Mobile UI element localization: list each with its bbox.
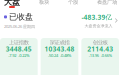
staticText: 深证成指	[49, 39, 69, 46]
staticText: 个股	[68, 0, 78, 5]
button[interactable]: -483.39亿	[82, 13, 118, 28]
staticText: -0.48%	[60, 53, 71, 58]
button[interactable]: 个股	[68, 0, 78, 6]
staticText: 2114.43	[87, 45, 113, 53]
staticText: 板块	[39, 0, 49, 5]
staticText: -483.39亿	[82, 13, 113, 22]
staticText: -13.96	[89, 53, 99, 58]
staticText: 10343.48	[44, 45, 74, 53]
staticText: 大盘资金净流入	[85, 23, 113, 28]
staticText: 上证指数	[9, 39, 29, 46]
staticText: 已收盘	[9, 12, 33, 22]
staticText: -0.66%	[101, 53, 112, 58]
button[interactable]: 看盘广场	[97, 0, 117, 6]
staticText: -0.22%	[18, 53, 29, 58]
button[interactable]: 大盘	[4, 0, 20, 8]
staticText: 大盘	[4, 0, 20, 7]
staticText: 创业板	[93, 39, 108, 46]
staticText: -7.92	[8, 53, 16, 58]
staticText: 3448.45	[6, 45, 32, 53]
button[interactable]: 深证成指	[41, 38, 78, 75]
button[interactable]: 上证指数	[0, 38, 38, 75]
button[interactable]: 板块	[39, 0, 49, 6]
button[interactable]: 创业板	[81, 38, 119, 75]
staticText: 2025-06-26 星期四	[4, 24, 35, 29]
staticText: -50.24	[48, 53, 58, 58]
staticText: 看盘广场	[97, 0, 117, 5]
